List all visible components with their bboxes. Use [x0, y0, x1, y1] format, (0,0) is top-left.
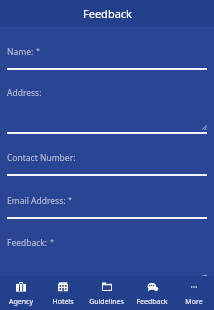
staticText: Contact Number: [7, 152, 76, 164]
button[interactable]: Guidelines [83, 276, 130, 310]
button[interactable]: Feedback: [7, 237, 207, 276]
button[interactable]: Email Address: [7, 195, 207, 219]
button[interactable]: Feedback [130, 276, 173, 310]
button[interactable]: Address: [7, 87, 207, 134]
staticText: * [50, 237, 54, 247]
button[interactable]: Hotels [42, 276, 83, 310]
staticText: Guidelines [89, 297, 124, 307]
staticText: * [68, 195, 72, 205]
button[interactable]: Agency [0, 276, 42, 310]
staticText: More [185, 297, 203, 307]
button[interactable]: More [173, 276, 214, 310]
staticText: Email Address: [7, 195, 66, 207]
staticText: * [36, 46, 40, 56]
staticText: Hotels [52, 297, 74, 307]
staticText: Agency [9, 297, 33, 307]
staticText: Feedback: [7, 237, 48, 249]
button[interactable]: Name: [7, 46, 207, 70]
staticText: Feedback [83, 6, 132, 21]
staticText: Feedback [136, 297, 168, 307]
staticText: Address: [7, 87, 42, 99]
button[interactable]: Contact Number: [7, 152, 207, 176]
staticText: Name: [7, 46, 34, 58]
